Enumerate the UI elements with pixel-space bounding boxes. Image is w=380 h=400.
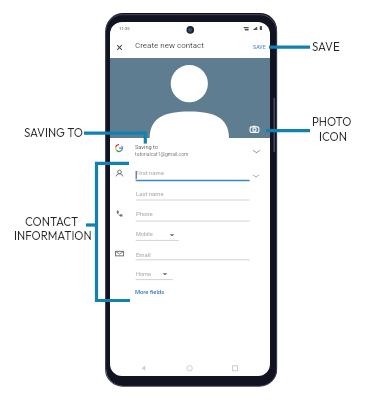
staticText: Last name (136, 191, 164, 198)
button[interactable]: More fields (135, 289, 165, 296)
staticText: ICON (319, 129, 347, 143)
staticText: First name (136, 170, 164, 177)
staticText: Phone (136, 211, 153, 218)
button[interactable]: Email (136, 252, 206, 261)
button[interactable]: Last name (136, 191, 206, 200)
staticText: tutorialcat1@gmail.com (135, 151, 189, 157)
staticText: PHOTO (312, 114, 352, 128)
button[interactable]: SAVE (253, 44, 266, 50)
button[interactable]: Mobile (136, 231, 206, 240)
staticText: More fields (135, 289, 165, 296)
button[interactable]: Home (136, 271, 206, 280)
button[interactable]: First name (136, 170, 206, 179)
staticText: 11:35 (119, 26, 130, 31)
staticText: SAVING TO (24, 125, 83, 139)
button[interactable]: Create new contact (135, 41, 204, 50)
staticText: Create new contact (135, 41, 204, 50)
staticText: Home (136, 271, 151, 277)
staticText: CONTACT (25, 214, 79, 228)
button[interactable]: Close (115, 43, 124, 52)
button[interactable]: Photo icon (249, 124, 260, 135)
staticText: Email (136, 252, 151, 259)
staticText: Saving to (135, 144, 158, 151)
button[interactable]: Phone (136, 211, 206, 220)
staticText: INFORMATION (14, 228, 92, 242)
button[interactable] (110, 140, 270, 160)
staticText: SAVE (312, 39, 340, 53)
staticText: SAVE (253, 44, 266, 50)
staticText: Mobile (136, 231, 153, 237)
